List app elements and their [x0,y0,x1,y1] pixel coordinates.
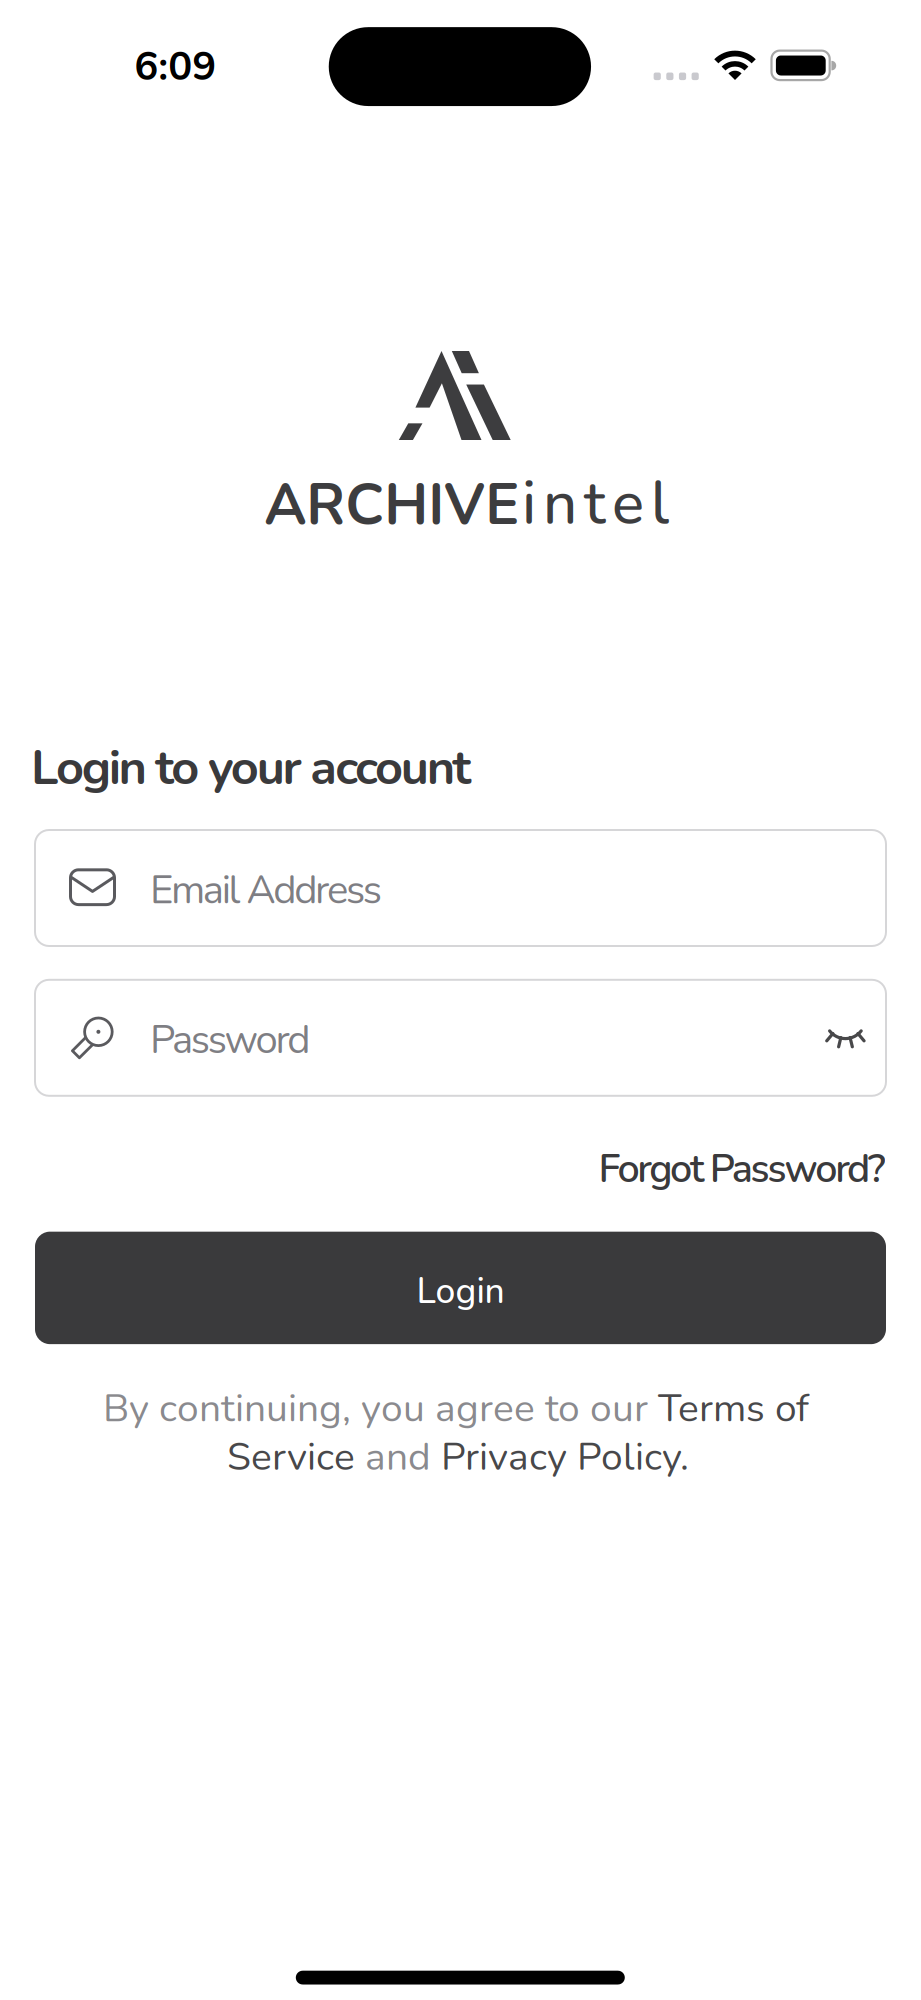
staticText: Login [416,1267,504,1315]
staticText: ARCHIVE [264,466,519,544]
button[interactable]: Email Address [35,830,886,946]
button[interactable]: Login [35,1232,886,1344]
staticText: intel [522,463,669,544]
button[interactable]: Password [35,980,886,1096]
button[interactable]: Privacy Policy [441,1430,689,1483]
staticText: Forgot Password? [598,1142,886,1196]
button[interactable]: Forgot Password? [598,1142,886,1196]
staticText: By continuing, you agree to our [103,1382,658,1435]
staticText: Login to your account [31,735,472,801]
staticText: Terms of [658,1382,809,1435]
staticText: and [355,1430,441,1483]
staticText: Service [227,1430,355,1483]
button[interactable]: Terms of Service [658,1382,809,1435]
staticText: 6:09 [134,39,216,94]
staticText: Privacy Policy. [441,1430,689,1483]
button[interactable]: Show password [817,1009,873,1065]
staticText: Password [150,1012,310,1067]
button[interactable]: Terms of Service [227,1430,355,1483]
staticText: Email Address [150,863,382,917]
